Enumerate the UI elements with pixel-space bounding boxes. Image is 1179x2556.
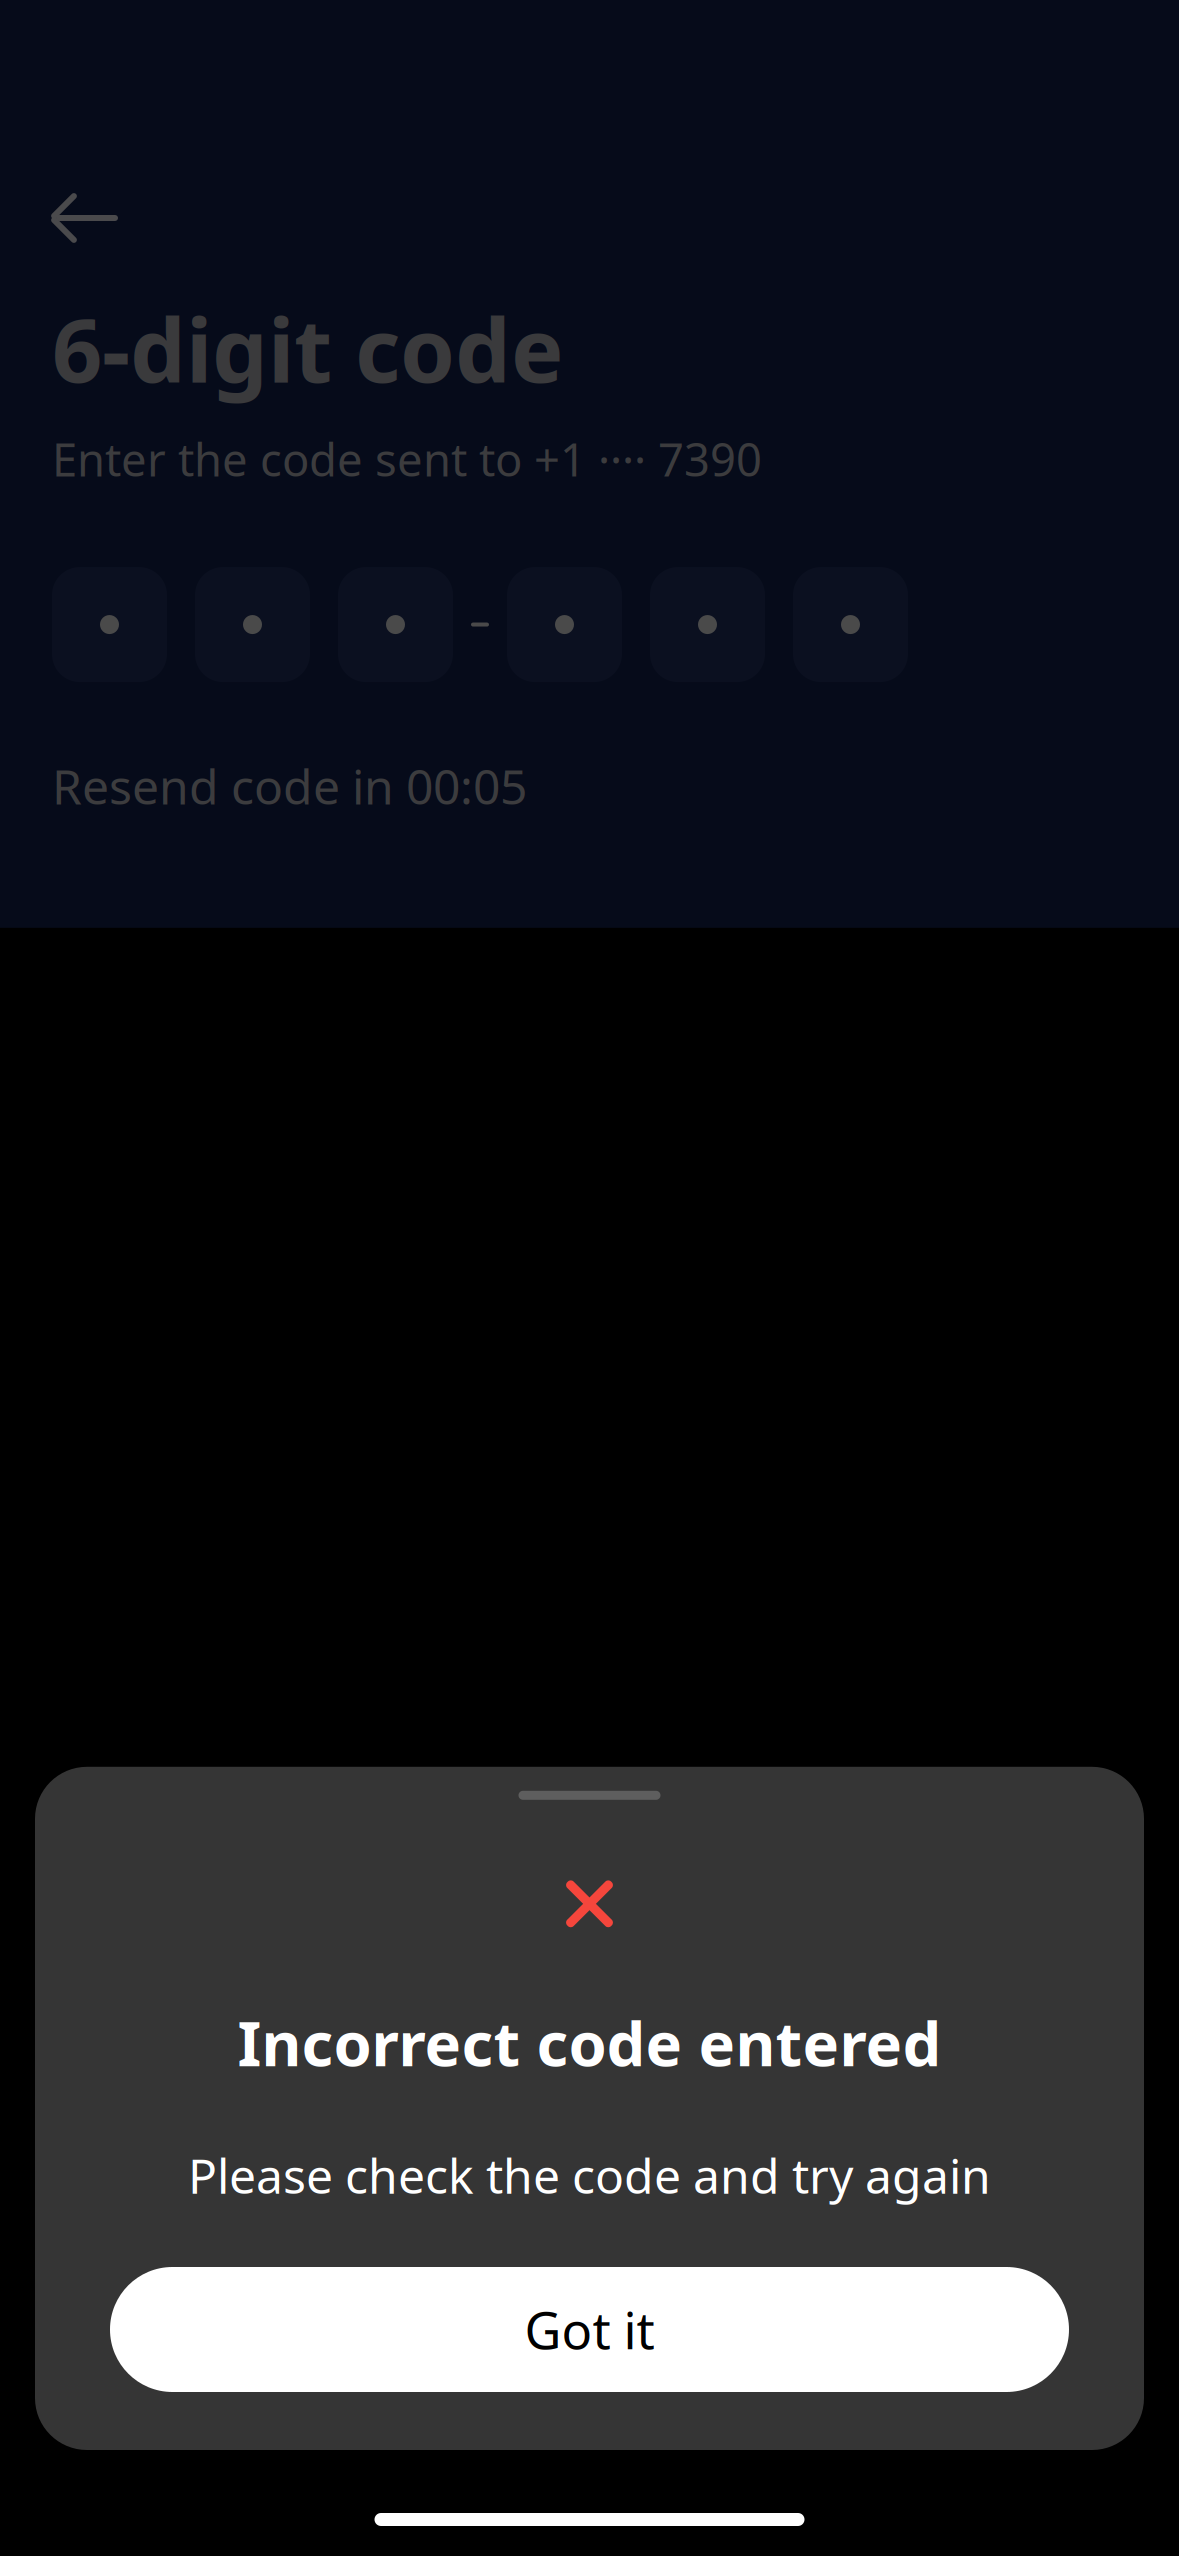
staticText: Enter the code sent to +1 ···· 7390 — [52, 429, 762, 489]
button[interactable]: Got it — [110, 2267, 1069, 2392]
staticText: Got it — [524, 2296, 654, 2363]
staticText: Resend code in 00:05 — [52, 754, 527, 818]
button[interactable]: Back — [36, 178, 132, 258]
staticText: 6-digit code — [52, 290, 564, 407]
staticText: Incorrect code entered — [237, 2002, 941, 2083]
staticText: Please check the code and try again — [188, 2143, 991, 2207]
